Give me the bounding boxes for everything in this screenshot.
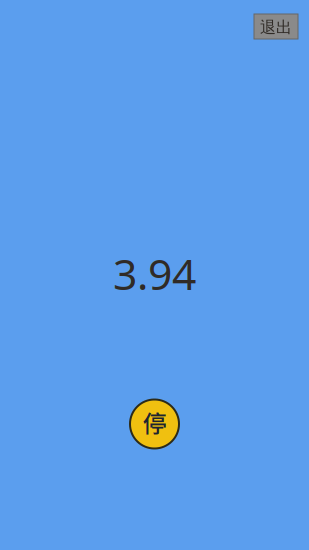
staticText: 退出 (260, 17, 292, 38)
button[interactable]: 退出 (254, 14, 298, 39)
staticText: 3.94 (113, 245, 196, 302)
button[interactable]: 停 (130, 399, 179, 449)
staticText: 停 (142, 405, 166, 439)
